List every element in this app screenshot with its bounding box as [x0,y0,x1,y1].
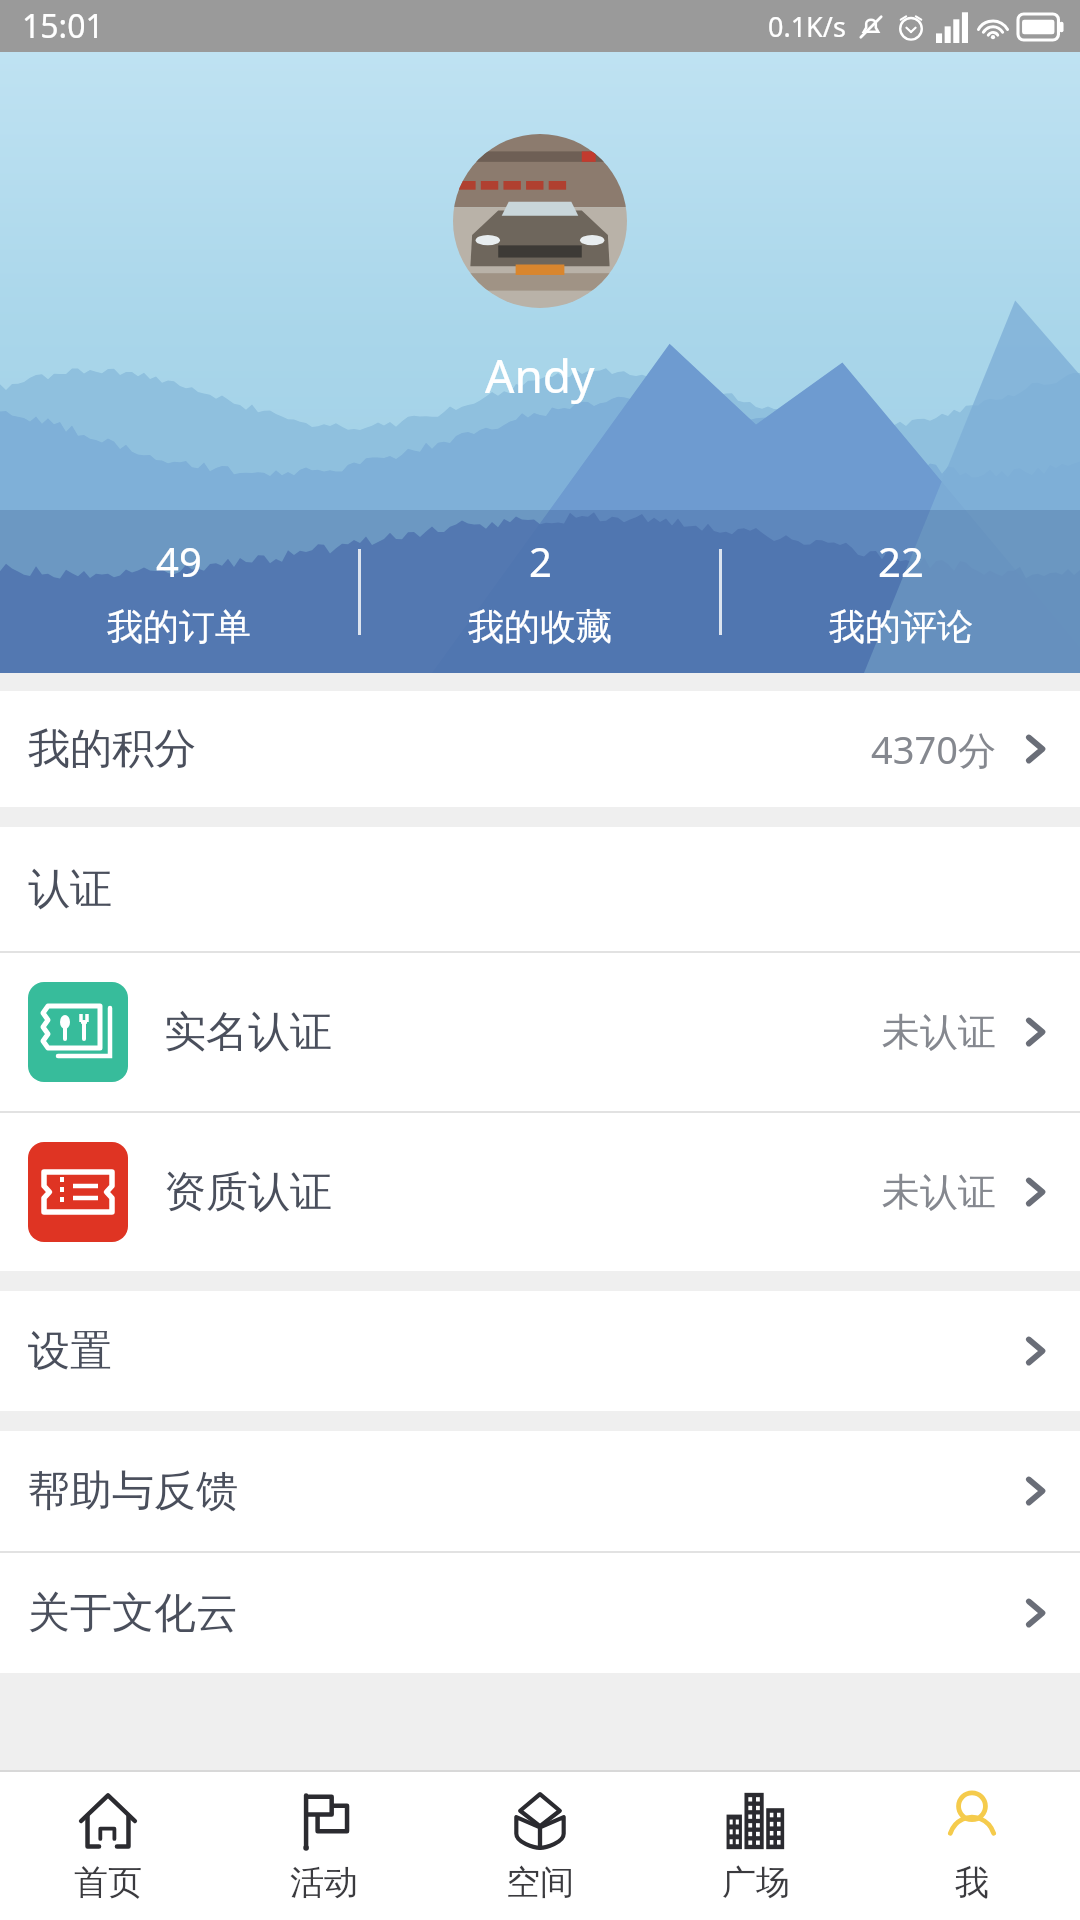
staticText: 我的积分 [28,723,196,776]
staticText: 广场 [722,1861,790,1904]
button[interactable]: 空间 [432,1772,648,1920]
staticText: 2 [529,534,552,588]
staticText: 实名认证 [164,1006,332,1059]
staticText: 49 [156,534,202,588]
staticText: 空间 [506,1861,574,1904]
button[interactable]: 2 [361,510,719,673]
button[interactable]: 设置 [0,1291,1080,1411]
button[interactable]: 49 [0,510,358,673]
button[interactable]: 我 [864,1772,1080,1920]
staticText: 活动 [290,1861,358,1904]
staticText: 关于文化云 [28,1587,238,1640]
staticText: 未认证 [882,1008,996,1056]
button[interactable]: 活动 [216,1772,432,1920]
button[interactable]: 广场 [648,1772,864,1920]
button[interactable]: 关于文化云 [0,1553,1080,1673]
button[interactable]: 资质认证 [0,1113,1080,1271]
button[interactable]: 帮助与反馈 [0,1431,1080,1551]
staticText: 资质认证 [164,1166,332,1219]
button[interactable]: 22 [722,510,1080,673]
staticText: 0.1K/s [768,8,846,45]
staticText: Andy [485,344,595,407]
staticText: 首页 [74,1861,142,1904]
staticText: 我 [955,1861,989,1904]
button[interactable]: 我的积分 [0,691,1080,807]
staticText: 我的收藏 [468,604,612,649]
staticText: 帮助与反馈 [28,1465,238,1518]
staticText: 15:01 [22,4,104,48]
staticText: 我的评论 [829,604,973,649]
staticText: 4370分 [871,723,996,775]
staticText: 未认证 [882,1168,996,1216]
staticText: 设置 [28,1325,112,1378]
button[interactable]: 实名认证 [0,953,1080,1111]
staticText: 我的订单 [107,604,251,649]
button[interactable]: 首页 [0,1772,216,1920]
staticText: 认证 [28,863,112,916]
button[interactable]: Profile photo [453,134,627,308]
staticText: 22 [878,534,924,588]
